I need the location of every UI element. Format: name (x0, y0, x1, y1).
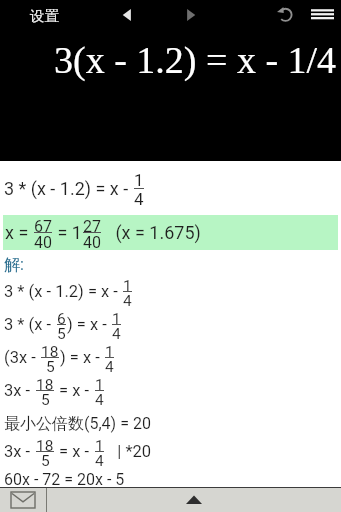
staticText: 1 (95, 437, 104, 451)
staticText: 18 (36, 376, 54, 390)
staticText: = x - (55, 442, 94, 461)
staticText: 3(x - 1.2) = x - 1/4 (54, 39, 337, 81)
staticText: 40 (83, 233, 101, 248)
staticText: 6 (57, 310, 66, 324)
staticText: (x = 1.675) (102, 222, 201, 243)
staticText: (3x - (4, 348, 40, 367)
staticText: 3 * (x - 1.2) = x - (4, 282, 122, 301)
staticText: x = (5, 222, 33, 243)
staticText: 18 (41, 343, 59, 357)
staticText: 67 (34, 217, 52, 232)
staticText: 4 (105, 358, 114, 372)
staticText: = x - (55, 381, 94, 400)
staticText: 4 (95, 452, 104, 466)
staticText: 4 (95, 391, 104, 405)
staticText: 5 (41, 391, 50, 405)
button[interactable] (272, 2, 298, 28)
staticText: 1 (95, 376, 104, 390)
staticText: 1 (123, 277, 132, 291)
staticText: 40 (34, 233, 52, 248)
staticText: ) = x - (60, 348, 104, 367)
staticText: 3 * (x - (4, 315, 56, 334)
button[interactable] (116, 4, 140, 26)
button[interactable] (178, 4, 202, 26)
button[interactable]: 3(x - 1.2) = x - 1/4 (54, 39, 341, 81)
staticText: 1 (112, 310, 121, 324)
button[interactable]: x = (3, 215, 338, 250)
staticText: 1 (134, 170, 144, 188)
staticText: 4 (112, 325, 121, 339)
staticText: 1 (105, 343, 114, 357)
staticText: 3 * (x - 1.2) = x - (4, 178, 133, 199)
staticText: 5 (46, 358, 55, 372)
staticText: ) = x - (67, 315, 111, 334)
staticText: = 1 (53, 222, 82, 243)
staticText: 3x - (4, 381, 35, 400)
button[interactable] (47, 488, 341, 512)
staticText: 最小公倍数(5,4) = 20 (4, 414, 151, 434)
staticText: 设置 (30, 7, 59, 25)
button[interactable]: 设置 (24, 1, 65, 31)
staticText: 18 (36, 437, 54, 451)
staticText: 5 (41, 452, 50, 466)
staticText: 27 (83, 217, 101, 232)
staticText: 5 (57, 325, 66, 339)
staticText: 4 (123, 292, 132, 306)
staticText: 4 (134, 189, 144, 207)
staticText: | *20 (105, 442, 152, 461)
staticText: 解: (4, 255, 24, 275)
button[interactable] (306, 2, 338, 26)
button[interactable] (0, 488, 46, 512)
staticText: 60x - 72 = 20x - 5 (4, 470, 125, 489)
staticText: 3x - (4, 442, 35, 461)
